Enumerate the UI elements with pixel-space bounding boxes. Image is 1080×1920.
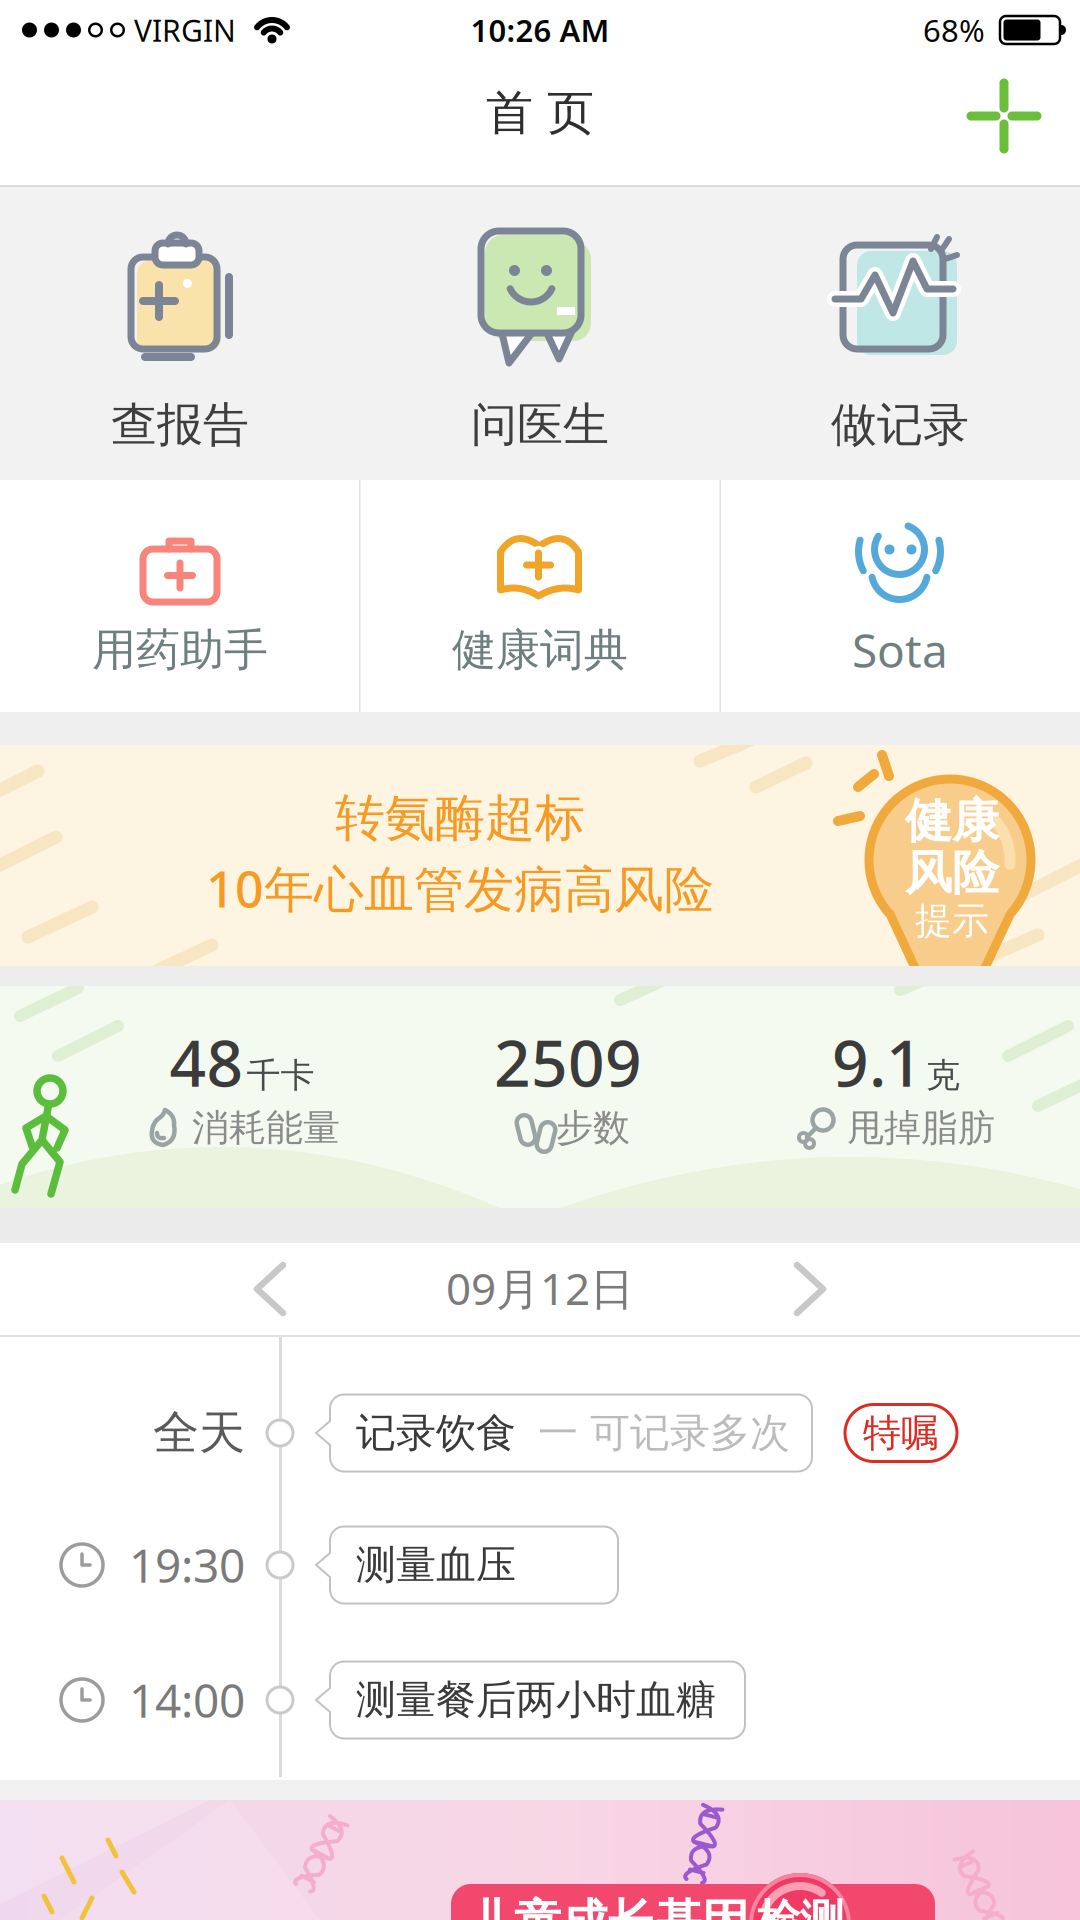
button[interactable]: 特嘱 [845,1404,957,1461]
button[interactable]: 测量血压 [316,1526,618,1603]
button[interactable]: 健康词典 [360,480,720,712]
button[interactable]: 转氨酶超标 [0,745,1080,966]
staticText: 健康 [905,791,999,851]
staticText: 68% [923,9,985,51]
staticText: 做记录 [831,396,969,454]
staticText: 克 [926,1054,960,1097]
staticText: 记录饮食 [356,1408,516,1458]
staticText: 消耗能量 [192,1105,340,1151]
button[interactable]: 问医生 [360,187,720,480]
staticText: 14:00 [129,1669,245,1731]
staticText: 检测 [756,1893,844,1920]
staticText: 首 页 [486,83,594,143]
staticText: 提示 [915,898,989,944]
staticText: 测量餐后两小时血糖 [356,1675,716,1725]
button[interactable]: 查报告 [0,187,360,480]
staticText: 19:30 [129,1534,245,1596]
staticText: 9.1 [832,1018,923,1106]
staticText: 一 可记录多次 [538,1408,790,1458]
staticText: 转氨酶超标 [335,786,585,849]
button[interactable]: Sota [720,480,1080,712]
button[interactable]: 儿童成长基因 [0,1800,1080,1920]
button[interactable]: 测量餐后两小时血糖 [316,1661,745,1738]
staticText: 甩掉脂肪 [847,1105,995,1151]
staticText: 测量血压 [356,1540,516,1590]
staticText: 48 [169,1018,243,1106]
button[interactable]: 记录饮食 [316,1394,812,1471]
staticText: Sota [852,619,948,681]
staticText: 问医生 [471,396,609,454]
staticText: 用药助手 [92,622,268,678]
button[interactable]: 用药助手 [0,480,360,712]
button[interactable]: Add [949,61,1059,171]
staticText: 2509 [494,1018,642,1106]
staticText: 步数 [556,1105,630,1151]
staticText: 风险 [905,843,999,903]
button[interactable]: Next day [765,1244,855,1334]
staticText: 儿童成长基因 [467,1892,749,1920]
staticText: 10:26 AM [470,9,609,51]
button[interactable]: 做记录 [720,187,1080,480]
staticText: 10年心血管发病高风险 [206,854,714,922]
staticText: 09月12日 [446,1258,634,1318]
staticText: 全天 [153,1404,245,1462]
staticText: 千卡 [246,1054,314,1097]
staticText: 查报告 [111,396,249,454]
button[interactable]: Previous day [225,1244,315,1334]
staticText: 特嘱 [863,1409,939,1457]
staticText: 健康词典 [452,622,628,678]
staticText: VIRGIN [134,10,236,50]
